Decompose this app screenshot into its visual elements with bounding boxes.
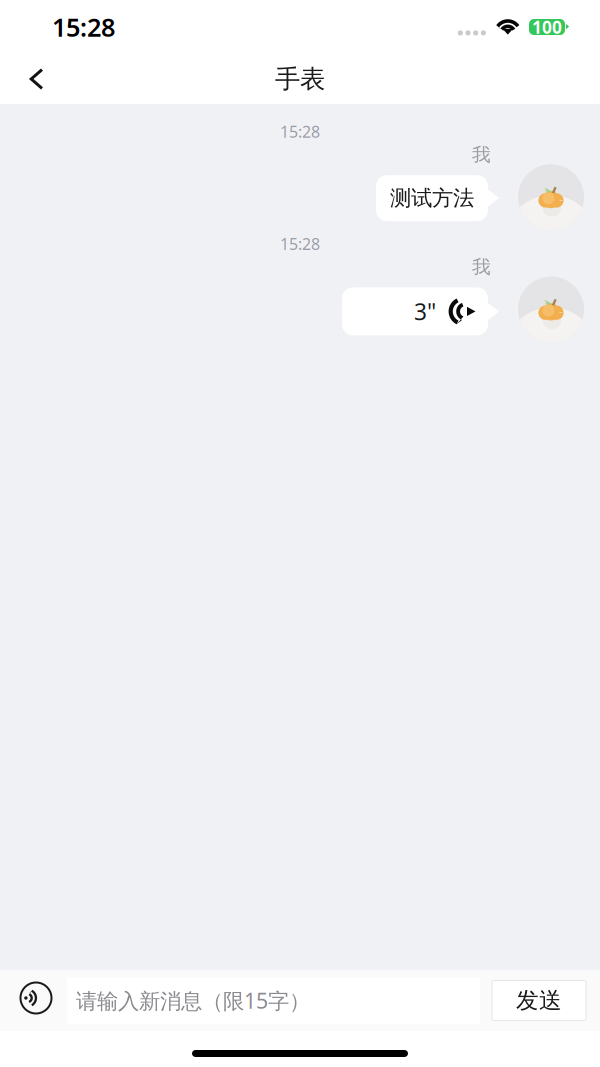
button[interactable]: Back — [9, 54, 63, 104]
button[interactable]: Record voice message — [5, 973, 67, 1028]
staticText: 15:28 — [280, 121, 320, 142]
button[interactable]: 请输入新消息（限15字） — [67, 977, 480, 1023]
staticText: 请输入新消息（限15字） — [76, 986, 310, 1015]
staticText: 15:28 — [280, 233, 320, 254]
staticText: 我 — [472, 143, 491, 166]
button[interactable]: 发送 — [492, 980, 586, 1020]
staticText: 测试方法 — [390, 185, 474, 211]
staticText: 手表 — [275, 63, 325, 94]
staticText: 15:28 — [52, 10, 115, 44]
staticText: 我 — [472, 255, 491, 278]
staticText: 100 — [532, 15, 562, 38]
staticText: 发送 — [516, 987, 562, 1014]
staticText: 3" — [414, 296, 436, 326]
